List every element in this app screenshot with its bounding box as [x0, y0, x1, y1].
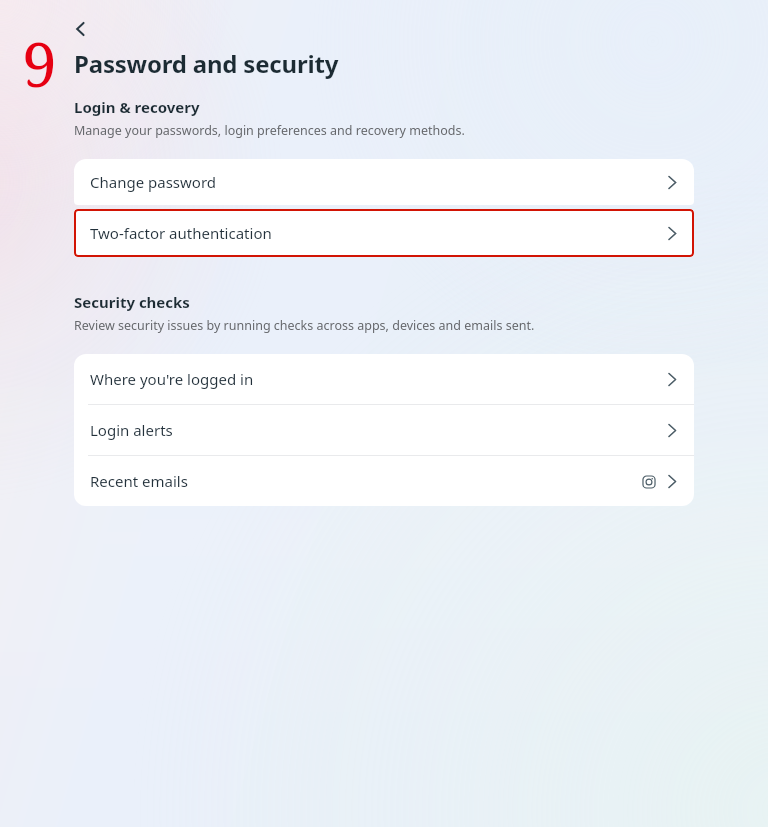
staticText: Where you're logged in [90, 369, 254, 389]
staticText: Login & recovery [74, 97, 200, 117]
staticText: Review security issues by running checks… [74, 317, 535, 334]
staticText: Security checks [74, 292, 190, 312]
staticText: Two-factor authentication [90, 223, 272, 243]
button[interactable]: Change password [74, 159, 694, 205]
staticText: Change password [90, 172, 217, 192]
button[interactable]: Recent emails [74, 456, 694, 506]
staticText: 9 [22, 21, 57, 95]
staticText: Recent emails [90, 471, 188, 491]
button[interactable]: Login alerts [74, 405, 694, 455]
staticText: Login alerts [90, 420, 173, 440]
button[interactable]: Back [66, 14, 96, 44]
staticText: Password and security [74, 47, 339, 80]
staticText: Manage your passwords, login preferences… [74, 122, 465, 139]
button[interactable]: Two-factor authentication [74, 209, 694, 257]
button[interactable]: Where you're logged in [74, 354, 694, 404]
